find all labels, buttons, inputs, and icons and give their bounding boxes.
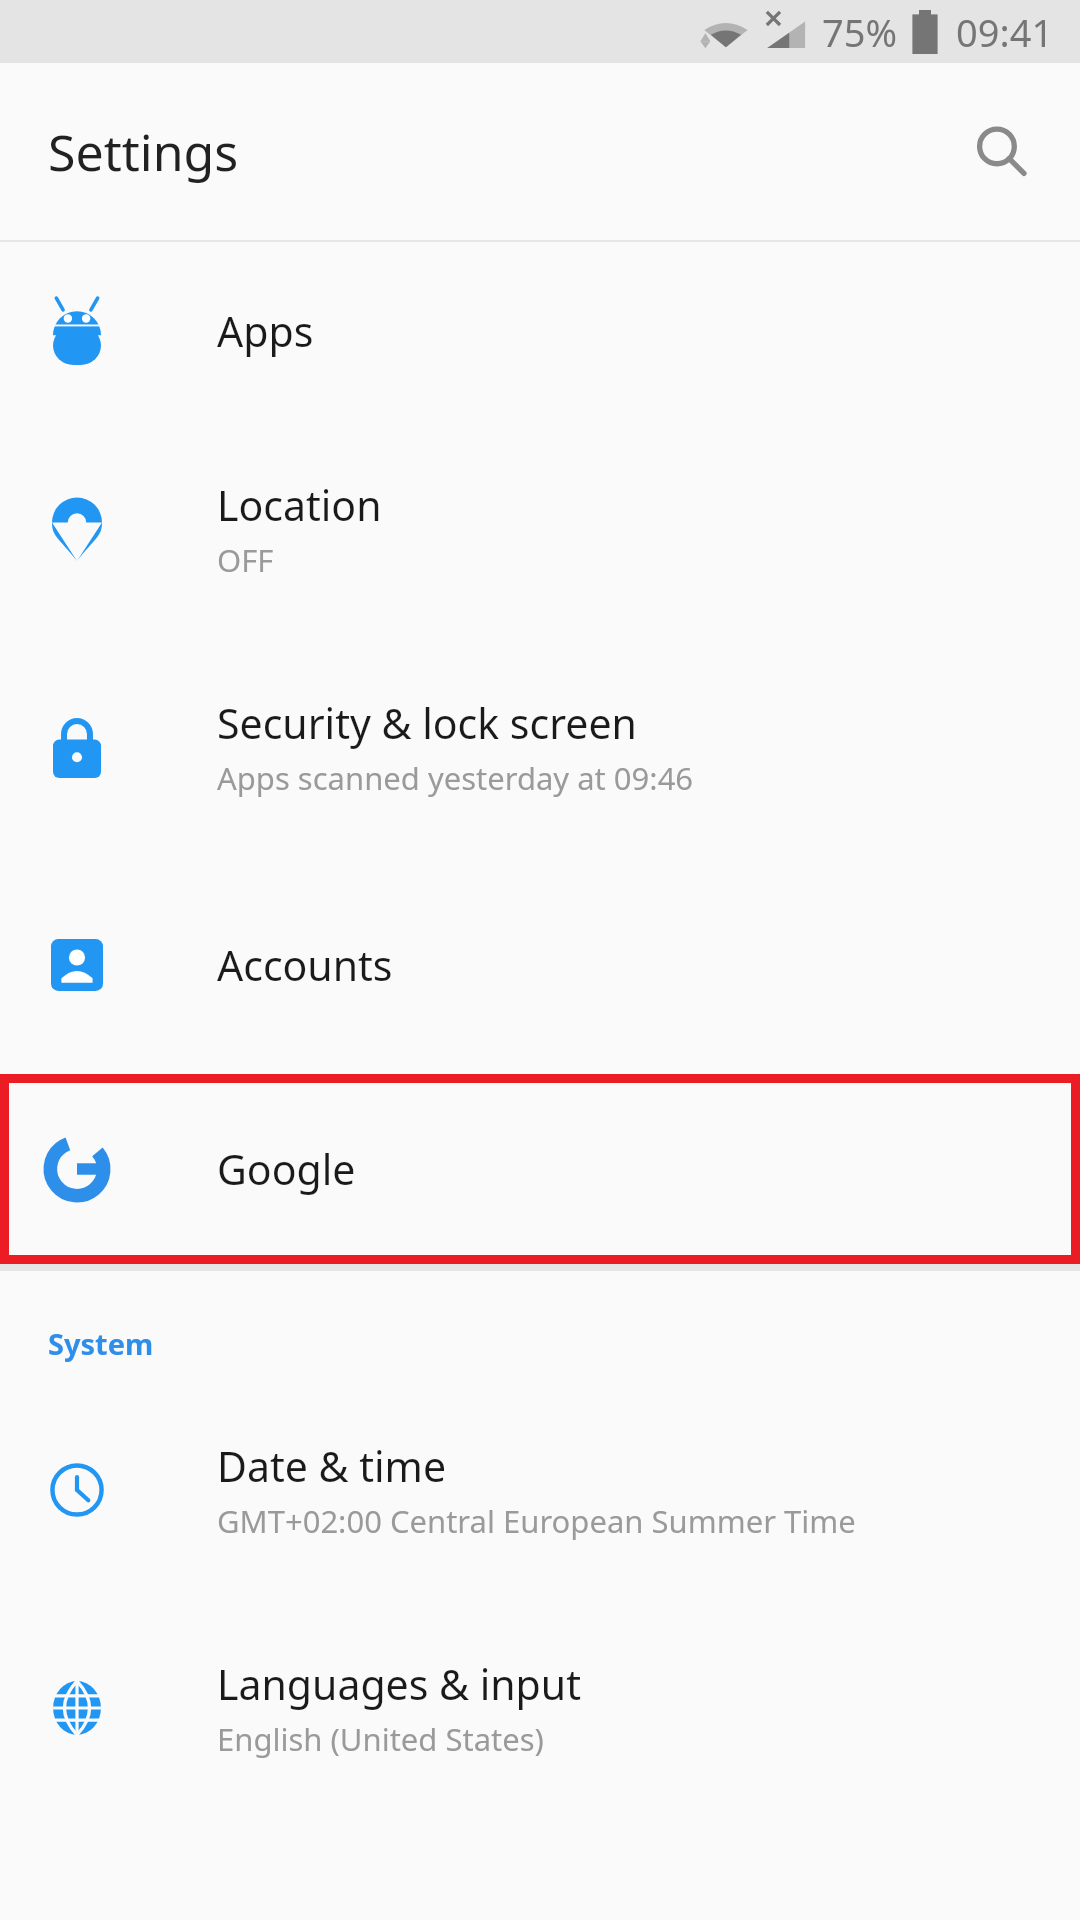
staticText: Google (217, 1141, 356, 1197)
button[interactable]: Languages & input (0, 1599, 1080, 1817)
staticText: Apps scanned yesterday at 09:46 (217, 757, 694, 799)
staticText: Settings (48, 118, 239, 186)
staticText: Date & time (217, 1438, 447, 1494)
staticText: English (United States) (217, 1718, 544, 1760)
staticText: System (48, 1324, 154, 1363)
staticText: Languages & input (217, 1656, 581, 1712)
button[interactable]: Accounts (0, 856, 1080, 1074)
staticText: GMT+02:00 Central European Summer Time (217, 1500, 856, 1542)
staticText: 75% (822, 6, 898, 58)
staticText: 09:41 (956, 6, 1054, 58)
staticText: Security & lock screen (217, 695, 637, 751)
button[interactable]: Location (0, 420, 1080, 638)
button[interactable]: Date & time (0, 1381, 1080, 1599)
staticText: Location (217, 477, 382, 533)
button[interactable]: Security & lock screen (0, 638, 1080, 856)
button[interactable]: Google (0, 1074, 1080, 1264)
button[interactable]: Apps (0, 242, 1080, 420)
button[interactable]: Search (954, 104, 1050, 200)
staticText: Accounts (217, 937, 393, 993)
staticText: OFF (217, 539, 274, 581)
staticText: Apps (217, 303, 314, 359)
